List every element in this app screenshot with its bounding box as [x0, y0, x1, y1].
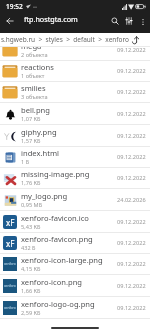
staticText: 3 объекта [21, 93, 48, 101]
button[interactable]: xF [0, 211, 150, 233]
button[interactable]: More options [136, 15, 149, 28]
staticText: 1 Б [21, 158, 30, 166]
staticText: 1,57 КБ [21, 137, 41, 145]
staticText: smilies [21, 83, 46, 93]
staticText: xenforo [4, 306, 16, 310]
button[interactable]: xenforo [0, 275, 150, 297]
staticText: 1 объект [21, 72, 45, 80]
button[interactable]: Sort [122, 14, 136, 28]
staticText: missing-image.png [21, 169, 90, 179]
button[interactable]: missing-image.png [0, 167, 150, 189]
button[interactable]: index.html [0, 146, 150, 168]
staticText: bell.png [21, 105, 50, 115]
staticText: reactions [21, 62, 54, 72]
button[interactable]: Up one level [129, 34, 141, 46]
button[interactable]: reactions [0, 60, 150, 82]
staticText: 09.12.2022 [117, 260, 146, 268]
staticText: 0,95 МБ [21, 201, 43, 209]
staticText: 2,59 КБ [21, 309, 41, 317]
staticText: xenforo-icon-large.png [21, 255, 103, 265]
button[interactable]: xenforo [0, 297, 150, 319]
staticText: 09.12.2022 [117, 47, 146, 54]
staticText: 1,76 КБ [21, 179, 41, 187]
staticText: s.hgweb.ru > styles > default > xenforo [1, 35, 129, 44]
staticText: 09.12.2022 [117, 132, 146, 140]
staticText: giphy.png [21, 127, 57, 137]
staticText: 09.12.2022 [117, 67, 146, 75]
staticText: 1,07 КБ [21, 115, 41, 123]
staticText: 09.12.2022 [117, 239, 146, 247]
staticText: xenforo [4, 262, 16, 266]
staticText: 09.12.2022 [117, 282, 146, 290]
button[interactable]: xenforo [0, 253, 150, 275]
staticText: mega [21, 47, 42, 51]
button[interactable]: xF [0, 232, 150, 254]
staticText: xF [6, 217, 15, 228]
button[interactable]: smilies [0, 81, 150, 103]
staticText: 2 объекта [21, 51, 48, 59]
staticText: xenforo-icon.png [21, 277, 83, 287]
staticText: 19:52 [6, 2, 23, 11]
staticText: ftp.hostgta.com [24, 14, 78, 24]
staticText: xenforo [4, 284, 16, 288]
staticText: 1,66 КБ [21, 287, 41, 295]
button[interactable]: Search [108, 14, 122, 28]
button[interactable]: bell.png [0, 103, 150, 125]
staticText: 24.02.2026 [117, 196, 146, 204]
button[interactable]: my_logo.png [0, 189, 150, 211]
staticText: 09.12.2022 [117, 88, 146, 96]
button[interactable]: Back [3, 14, 17, 28]
staticText: xenforo-favicon.ico [21, 213, 89, 223]
staticText: 09.12.2022 [117, 218, 146, 226]
button[interactable]: mega [0, 47, 150, 61]
staticText: 4,15 КБ [21, 265, 41, 273]
staticText: 09.12.2022 [117, 304, 146, 312]
staticText: 432 Б [21, 244, 36, 252]
staticText: 5,43 КБ [21, 223, 41, 231]
staticText: xenforo-favicon.png [21, 234, 93, 244]
staticText: 09.12.2022 [117, 153, 146, 161]
button[interactable]: giphy.png [0, 125, 150, 147]
staticText: my_logo.png [21, 191, 68, 201]
staticText: index.html [21, 148, 59, 158]
staticText: xF [6, 238, 15, 249]
staticText: xenforo-logo-og.png [21, 299, 95, 309]
staticText: 09.12.2022 [117, 174, 146, 182]
staticText: 09.12.2022 [117, 110, 146, 118]
